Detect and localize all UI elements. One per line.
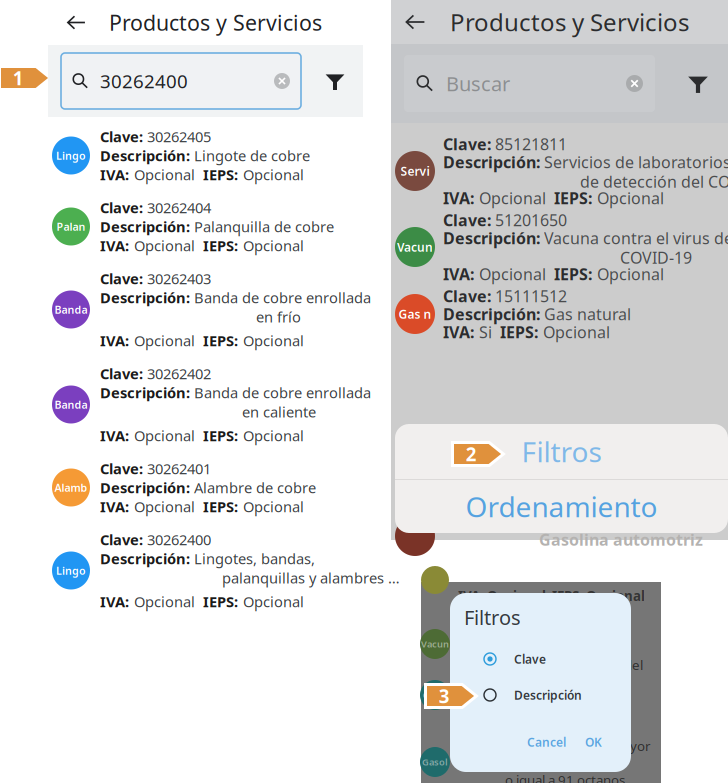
staticText: Opcional	[597, 263, 664, 285]
staticText: IEPS:	[203, 165, 238, 184]
staticText: nayor	[615, 737, 651, 755]
staticText: 30262402	[147, 364, 211, 383]
staticText: Banda de cobre enrollada	[194, 383, 371, 402]
staticText: 30262404	[147, 198, 211, 217]
staticText: 1	[13, 66, 24, 90]
staticText: IVA:	[443, 263, 474, 285]
button[interactable]: Ordenamiento	[395, 480, 728, 533]
staticText: IVA:	[100, 497, 129, 516]
button[interactable]: Descripción	[452, 680, 592, 710]
staticText: Gasol	[422, 756, 448, 768]
staticText: Descripción:	[100, 217, 190, 236]
button[interactable]: Filter	[315, 61, 355, 101]
staticText: o igual a 91 octanos	[505, 771, 625, 783]
staticText: Vacun	[421, 638, 449, 650]
staticText: Descripción:	[100, 383, 190, 402]
staticText: 15111512	[495, 285, 567, 307]
staticText: 51201650	[495, 209, 567, 231]
button[interactable]: Clave	[452, 644, 592, 674]
staticText: IEPS:	[203, 592, 238, 611]
staticText: Descripción:	[100, 478, 190, 497]
staticText: 30262405	[147, 127, 211, 146]
staticText: Clave:	[100, 127, 143, 146]
button[interactable]: OK	[579, 731, 608, 753]
staticText: Palan	[56, 219, 85, 234]
staticText: 3	[439, 684, 450, 708]
button[interactable]: Clear search	[274, 73, 290, 89]
staticText: Cancel	[527, 734, 566, 750]
staticText: OK	[585, 734, 602, 750]
staticText: Clave:	[443, 209, 491, 231]
staticText: Gas natural	[544, 303, 631, 325]
staticText: Ordenamiento	[465, 488, 657, 525]
staticText: Clave:	[443, 133, 491, 155]
staticText: s del	[615, 656, 643, 674]
button[interactable]: Cancel	[521, 731, 572, 753]
staticText: IVA:	[443, 321, 474, 343]
staticText: IVA:	[100, 331, 129, 350]
staticText: Lingo	[56, 563, 86, 578]
staticText: palanquillas y alambres …	[222, 568, 400, 587]
staticText: Clave:	[100, 459, 143, 478]
staticText: Descripción:	[443, 303, 540, 325]
staticText: Descripción:	[443, 227, 540, 249]
staticText: Buscar	[446, 70, 510, 97]
staticText: 30262400	[100, 69, 188, 93]
staticText: Filtros	[521, 433, 601, 470]
button[interactable]: Clear search	[626, 75, 643, 92]
staticText: Descripción	[514, 687, 582, 703]
staticText: Vacuna contra el virus del	[544, 227, 728, 249]
staticText: 30262401	[147, 459, 211, 478]
staticText: Opcional	[134, 497, 195, 516]
staticText: IVA:	[100, 426, 129, 445]
button[interactable]: Filter	[677, 62, 719, 104]
staticText: en frío	[256, 307, 301, 326]
staticText: Gas n	[398, 306, 431, 322]
staticText: Descripción:	[100, 146, 190, 165]
staticText: de detección del COVID-19	[580, 171, 728, 192]
staticText: Alamb	[54, 480, 87, 495]
staticText: Alambre de cobre	[194, 478, 316, 497]
staticText: Lingote de cobre	[194, 146, 310, 165]
staticText: Opcional	[134, 592, 195, 611]
staticText: IVA: Opcional IEPS: Opcional	[458, 587, 645, 605]
staticText: Palanquilla de cobre	[194, 217, 334, 236]
button[interactable]: Back	[59, 5, 93, 39]
staticText: IVA:	[100, 592, 129, 611]
staticText: Opcional	[134, 165, 195, 184]
button[interactable]: Filtros	[395, 424, 728, 479]
staticText: Clave	[514, 651, 546, 667]
staticText: COVID-19	[620, 247, 692, 268]
staticText: IVA:	[443, 187, 474, 209]
staticText: Clave:	[100, 364, 143, 383]
staticText: Clave:	[443, 285, 491, 307]
staticText: Opcional	[479, 187, 546, 209]
staticText: Si	[479, 321, 492, 343]
staticText: Clave:	[100, 530, 143, 549]
staticText: Opcional	[243, 165, 304, 184]
staticText: Opcional	[597, 187, 664, 209]
staticText: Gas n	[422, 689, 447, 701]
staticText: Vacun	[397, 239, 433, 255]
staticText: Opcional	[243, 236, 304, 255]
button[interactable]: Back	[397, 4, 433, 40]
staticText: Clave:	[100, 198, 143, 217]
staticText: Productos y Servicios	[450, 6, 689, 38]
staticText: Servicios de laboratorios	[544, 151, 728, 173]
staticText: Descripción:	[100, 288, 190, 307]
staticText: IEPS:	[203, 497, 238, 516]
staticText: Opcional	[543, 321, 610, 343]
staticText: Banda de cobre enrollada	[194, 288, 371, 307]
staticText: IEPS:	[203, 426, 238, 445]
staticText: Opcional	[243, 331, 304, 350]
staticText: Opcional	[243, 592, 304, 611]
staticText: Opcional	[134, 426, 195, 445]
staticText: Opcional	[134, 236, 195, 255]
staticText: Descripción:	[100, 549, 190, 568]
staticText: Filtros	[464, 604, 521, 631]
staticText: IVA:	[100, 236, 129, 255]
staticText: Banda	[54, 397, 87, 412]
staticText: Lingotes, bandas,	[194, 549, 315, 568]
staticText: IEPS:	[554, 263, 592, 285]
staticText: IEPS:	[203, 331, 238, 350]
